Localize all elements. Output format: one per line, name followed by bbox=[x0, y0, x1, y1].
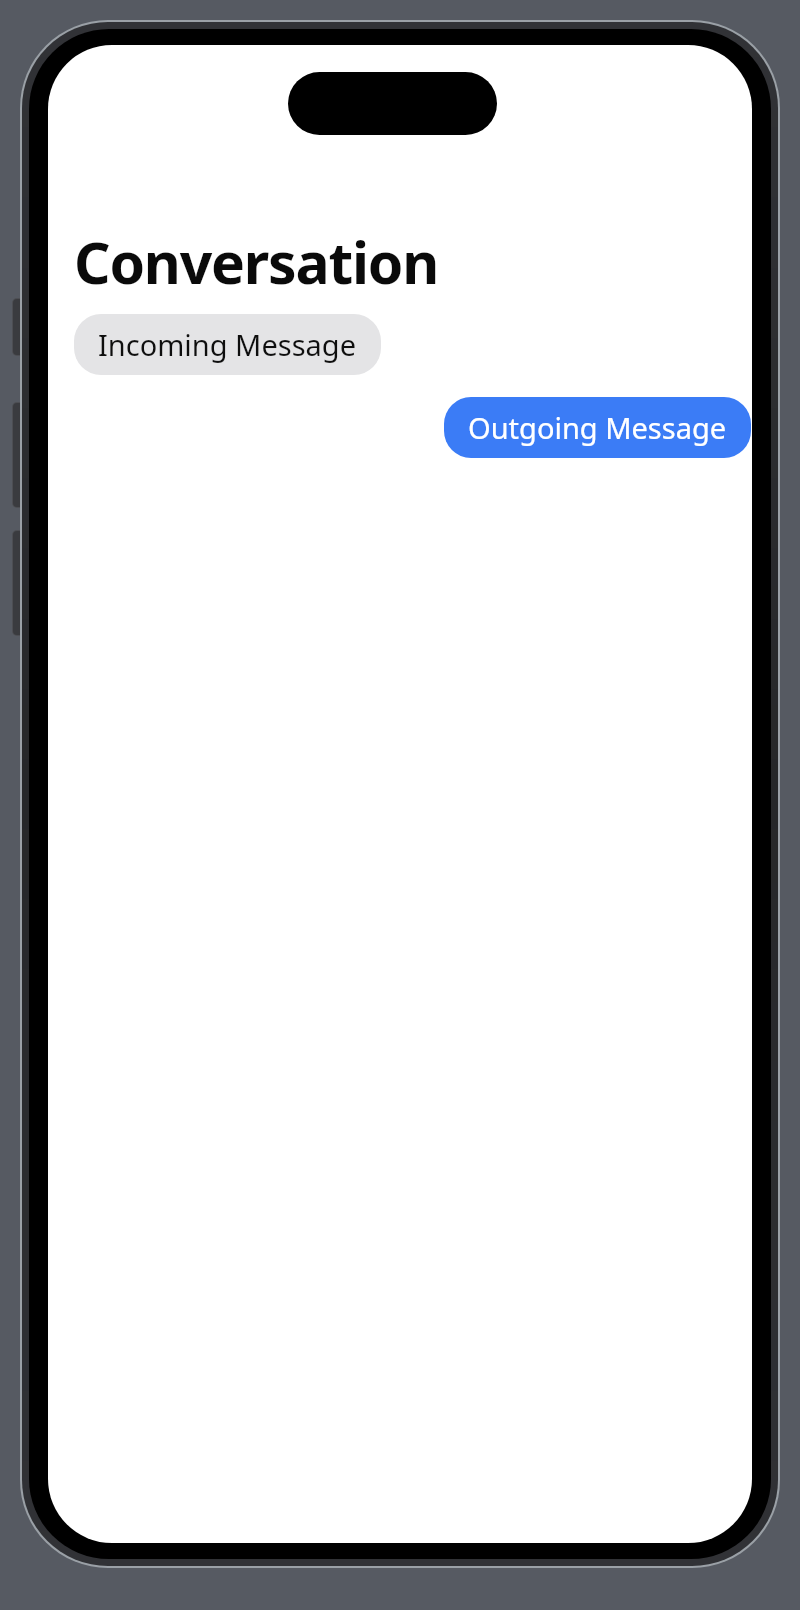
staticText: Conversation bbox=[74, 223, 439, 301]
button[interactable]: Volume down bbox=[12, 530, 25, 636]
button[interactable]: Incoming Message bbox=[74, 314, 381, 375]
button[interactable]: Silence switch bbox=[12, 298, 25, 356]
button[interactable]: Outgoing Message bbox=[444, 397, 751, 458]
button[interactable]: Volume up bbox=[12, 402, 25, 508]
staticText: Outgoing Message bbox=[468, 408, 727, 447]
staticText: Incoming Message bbox=[98, 325, 357, 364]
button[interactable]: Power bbox=[762, 462, 776, 614]
